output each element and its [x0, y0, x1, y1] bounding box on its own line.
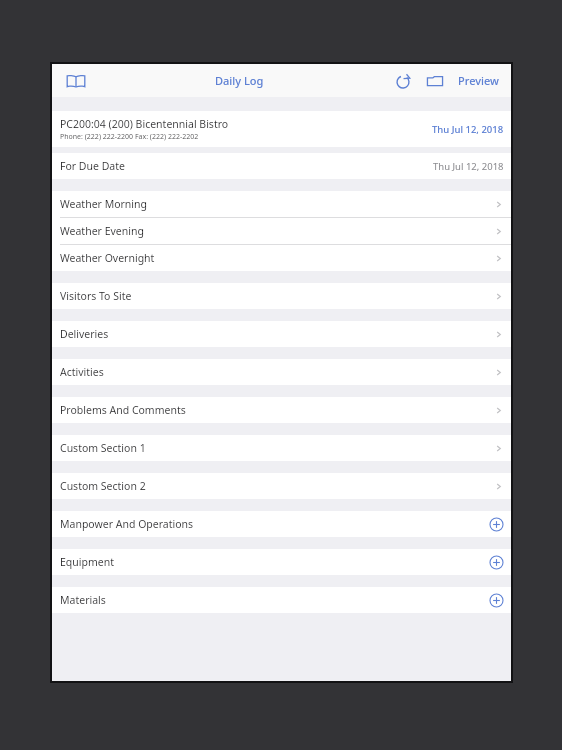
staticText: Custom Section 2: [60, 479, 146, 493]
staticText: Materials: [60, 593, 106, 607]
staticText: Manpower And Operations: [60, 517, 194, 531]
button[interactable]: Manpower And Operations: [52, 511, 511, 537]
button[interactable]: Preview: [456, 69, 501, 92]
staticText: Thu Jul 12, 2018: [433, 160, 504, 173]
other: Refresh: [394, 72, 412, 90]
button[interactable]: Weather Overnight: [52, 245, 511, 271]
button[interactable]: Custom Section 2: [52, 473, 511, 499]
staticText: For Due Date: [60, 159, 125, 173]
button[interactable]: PC200:04 (200) Bicentennial Bistro: [52, 111, 511, 147]
button[interactable]: Problems And Comments: [52, 397, 511, 423]
staticText: Deliveries: [60, 327, 109, 341]
button[interactable]: Custom Section 1: [52, 435, 511, 461]
staticText: Daily Log: [215, 73, 264, 88]
button[interactable]: Materials: [52, 587, 511, 613]
button[interactable]: Activities: [52, 359, 511, 385]
button[interactable]: Weather Evening: [52, 218, 511, 244]
staticText: Phone: (222) 222-2200 Fax: (222) 222-220…: [60, 132, 199, 142]
button[interactable]: Refresh: [390, 68, 416, 94]
staticText: PC200:04 (200) Bicentennial Bistro: [60, 117, 229, 131]
button[interactable]: Weather Morning: [52, 191, 511, 217]
button[interactable]: Equipment: [52, 549, 511, 575]
button[interactable]: Deliveries: [52, 321, 511, 347]
button[interactable]: For Due Date: [52, 153, 511, 179]
button[interactable]: Library: [62, 67, 90, 95]
staticText: Equipment: [60, 555, 114, 569]
staticText: Preview: [458, 73, 499, 88]
staticText: Thu Jul 12, 2018: [432, 123, 504, 136]
staticText: Problems And Comments: [60, 403, 186, 417]
staticText: Activities: [60, 365, 104, 379]
other: Library: [66, 71, 86, 91]
other: Folder: [426, 72, 444, 90]
staticText: Visitors To Site: [60, 289, 132, 303]
button[interactable]: Visitors To Site: [52, 283, 511, 309]
staticText: Weather Overnight: [60, 251, 155, 265]
staticText: Weather Evening: [60, 224, 144, 238]
staticText: Custom Section 1: [60, 441, 146, 455]
staticText: Weather Morning: [60, 197, 147, 211]
button[interactable]: Folder: [422, 68, 448, 94]
